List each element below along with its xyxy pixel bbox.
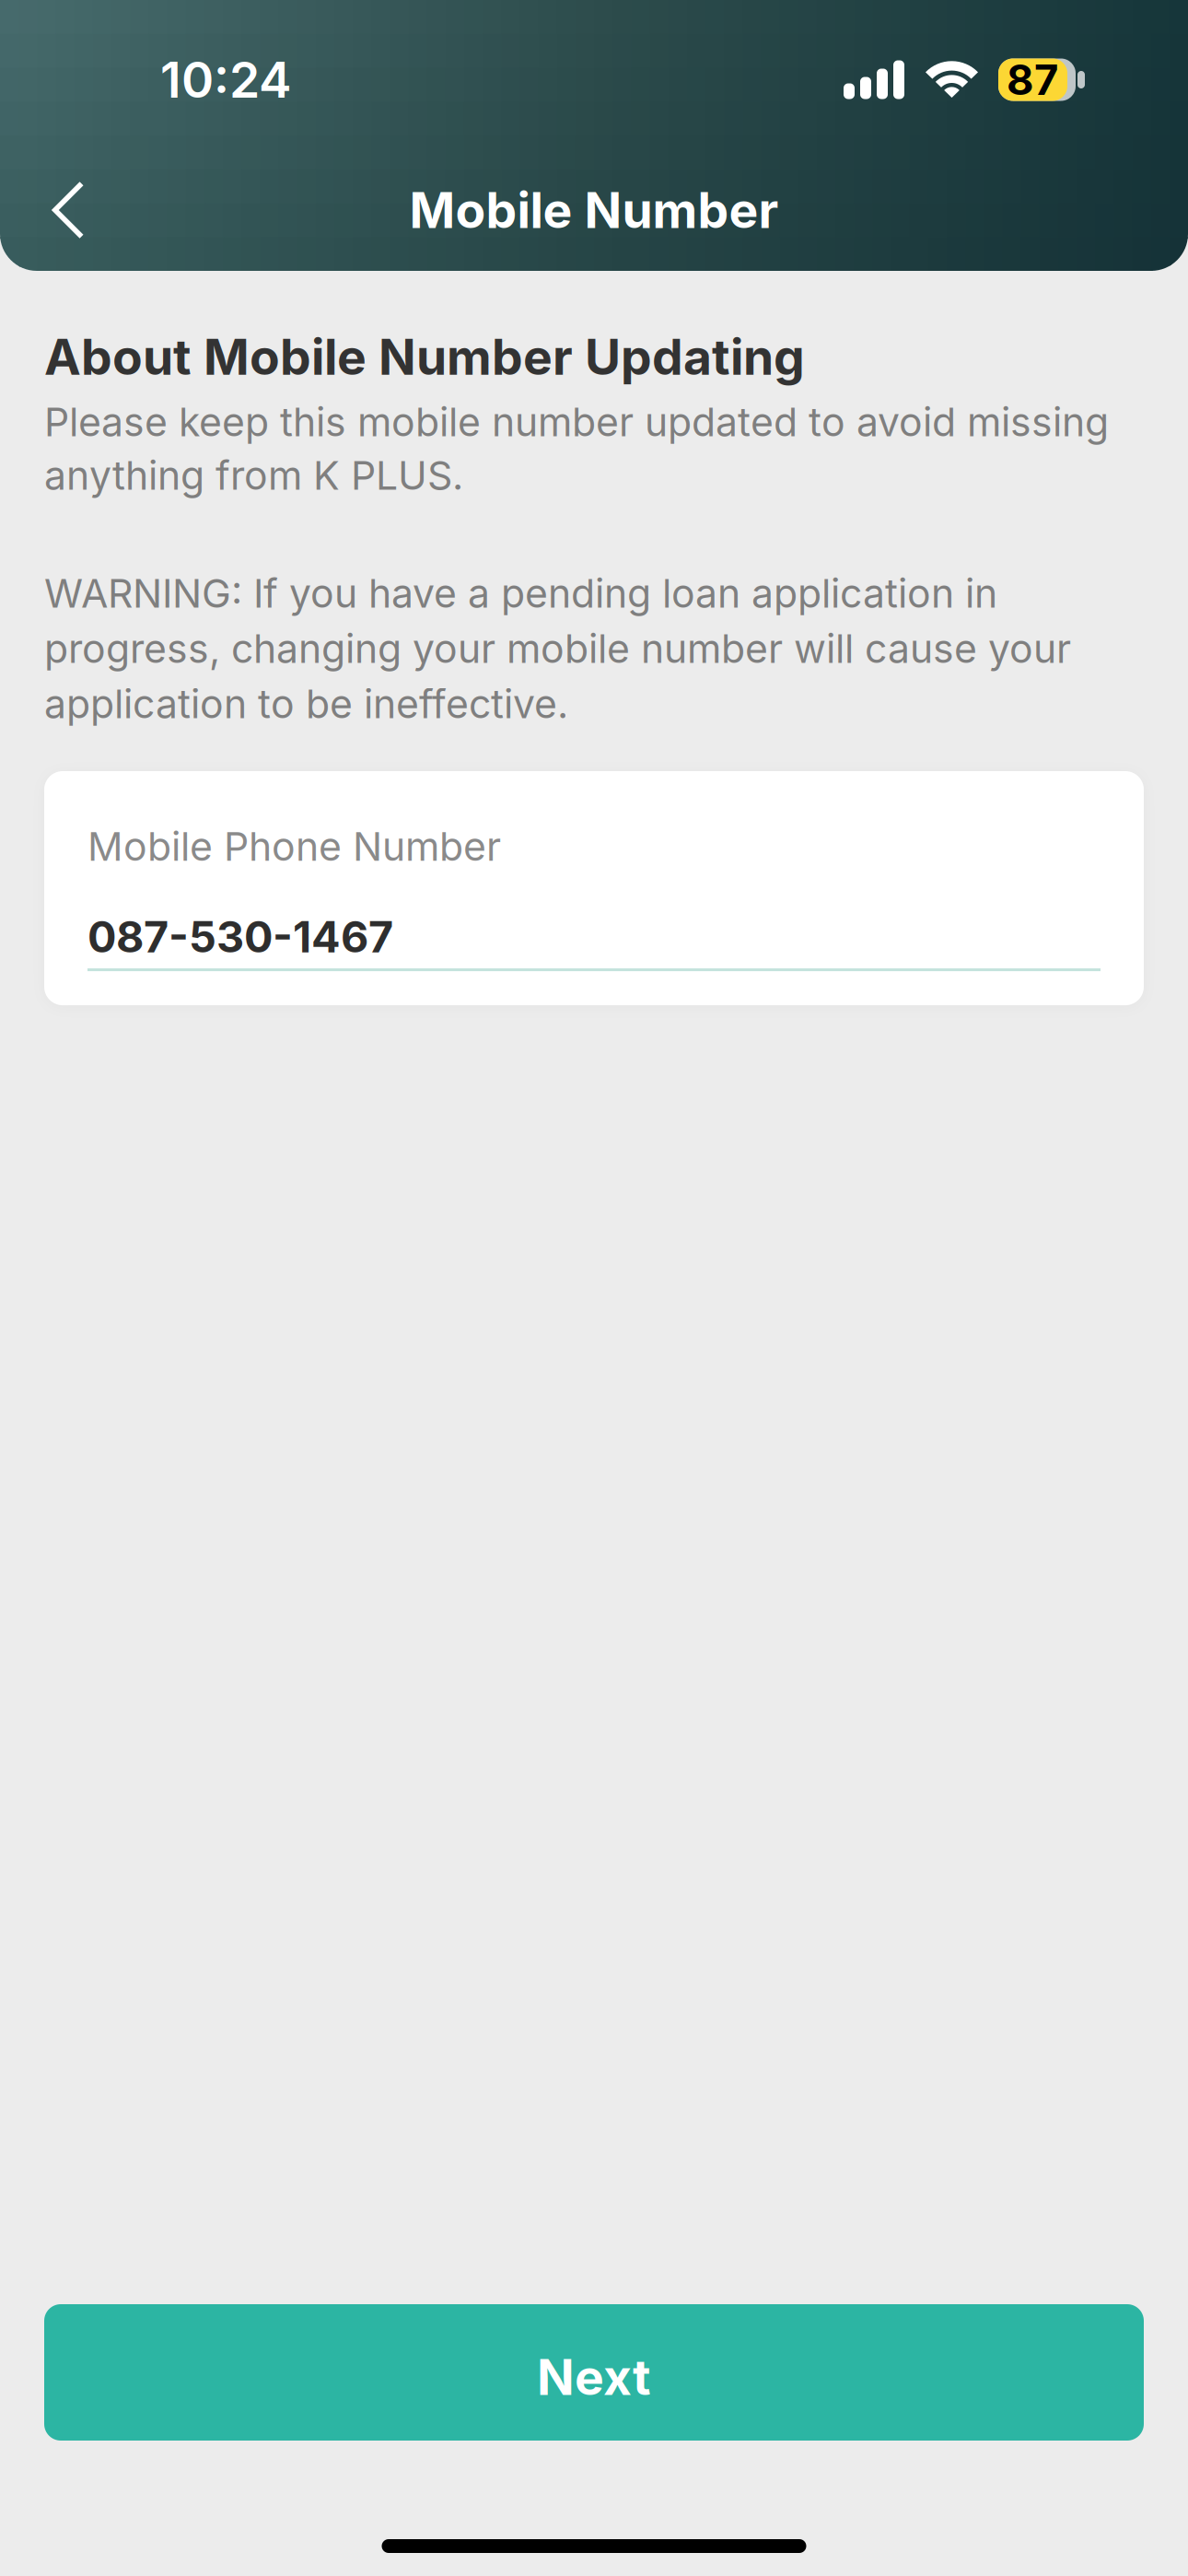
staticText: WARNING: If you have a pending loan appl… — [44, 570, 997, 617]
button[interactable]: Next — [44, 2304, 1144, 2441]
staticText: anything from K PLUS. — [44, 452, 463, 499]
staticText: Mobile Phone Number — [87, 823, 501, 870]
staticText: progress, changing your mobile number wi… — [44, 625, 1071, 672]
staticText: 87 — [1007, 54, 1058, 105]
staticText: 087-530-1467 — [87, 911, 393, 963]
staticText: Mobile Number — [409, 180, 779, 240]
button[interactable]: Back — [0, 164, 122, 256]
staticText: Please keep this mobile number updated t… — [44, 398, 1109, 446]
staticText: 10:24 — [160, 50, 292, 109]
staticText: Next — [537, 2347, 651, 2407]
staticText: application to be ineffective. — [44, 680, 568, 728]
staticText: About Mobile Number Updating — [44, 327, 805, 386]
